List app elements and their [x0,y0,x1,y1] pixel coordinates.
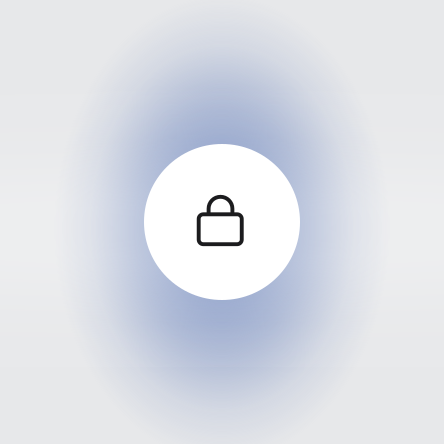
button[interactable]: Unlock [0,0,444,444]
